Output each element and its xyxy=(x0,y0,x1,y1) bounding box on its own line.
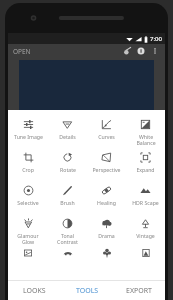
button[interactable]: Vintage xyxy=(126,213,165,246)
button[interactable]: Perspective xyxy=(87,147,126,180)
button[interactable]: Drama xyxy=(87,213,126,246)
staticText: Tune Image xyxy=(14,133,43,140)
staticText: Details xyxy=(59,133,76,140)
staticText: Glamour Glow xyxy=(17,232,39,245)
button[interactable]: OPEN xyxy=(8,44,36,58)
staticText: HDR Scape xyxy=(132,199,159,206)
staticText: TOOLS xyxy=(76,286,99,296)
button[interactable]: White Balance xyxy=(126,114,165,147)
button[interactable]: bw xyxy=(126,246,165,260)
button[interactable]: Tune Image xyxy=(8,114,48,147)
button[interactable]: retro xyxy=(48,246,87,260)
staticText: Perspective xyxy=(92,166,121,173)
staticText: 7:00 xyxy=(150,35,162,43)
staticText: Crop xyxy=(22,166,34,173)
staticText: EXPORT xyxy=(126,286,152,296)
button[interactable]: grainy xyxy=(8,246,48,260)
button[interactable]: Compare xyxy=(120,44,134,58)
staticText: Expand xyxy=(136,166,155,173)
staticText: Healing xyxy=(97,199,116,206)
button[interactable]: LOOKS xyxy=(8,281,61,300)
staticText: Rotate xyxy=(60,166,76,173)
button[interactable]: More options xyxy=(148,44,162,58)
button[interactable]: Selective xyxy=(8,180,48,213)
button[interactable]: Curves xyxy=(87,114,126,147)
staticText: Drama xyxy=(98,232,115,239)
staticText: Brush xyxy=(60,199,75,206)
staticText: Curves xyxy=(98,133,115,140)
staticText: Selective xyxy=(17,199,39,206)
staticText: Vintage xyxy=(136,232,155,239)
staticText: Tonal Contrast xyxy=(57,232,78,245)
button[interactable]: grunge xyxy=(87,246,126,260)
button[interactable]: Details xyxy=(48,114,87,147)
staticText: White Balance xyxy=(136,133,156,146)
button[interactable]: Info xyxy=(134,44,148,58)
staticText: LOOKS xyxy=(23,286,46,296)
button[interactable]: Brush xyxy=(48,180,87,213)
staticText: OPEN xyxy=(13,47,31,55)
button[interactable]: Expand xyxy=(126,147,165,180)
button[interactable]: TOOLS xyxy=(61,281,113,300)
button[interactable]: EXPORT xyxy=(113,281,165,300)
button[interactable]: Rotate xyxy=(48,147,87,180)
button[interactable]: HDR Scape xyxy=(126,180,165,213)
button[interactable]: Glamour Glow xyxy=(8,213,48,246)
button[interactable]: Crop xyxy=(8,147,48,180)
button[interactable]: Tonal Contrast xyxy=(48,213,87,246)
button[interactable]: Healing xyxy=(87,180,126,213)
